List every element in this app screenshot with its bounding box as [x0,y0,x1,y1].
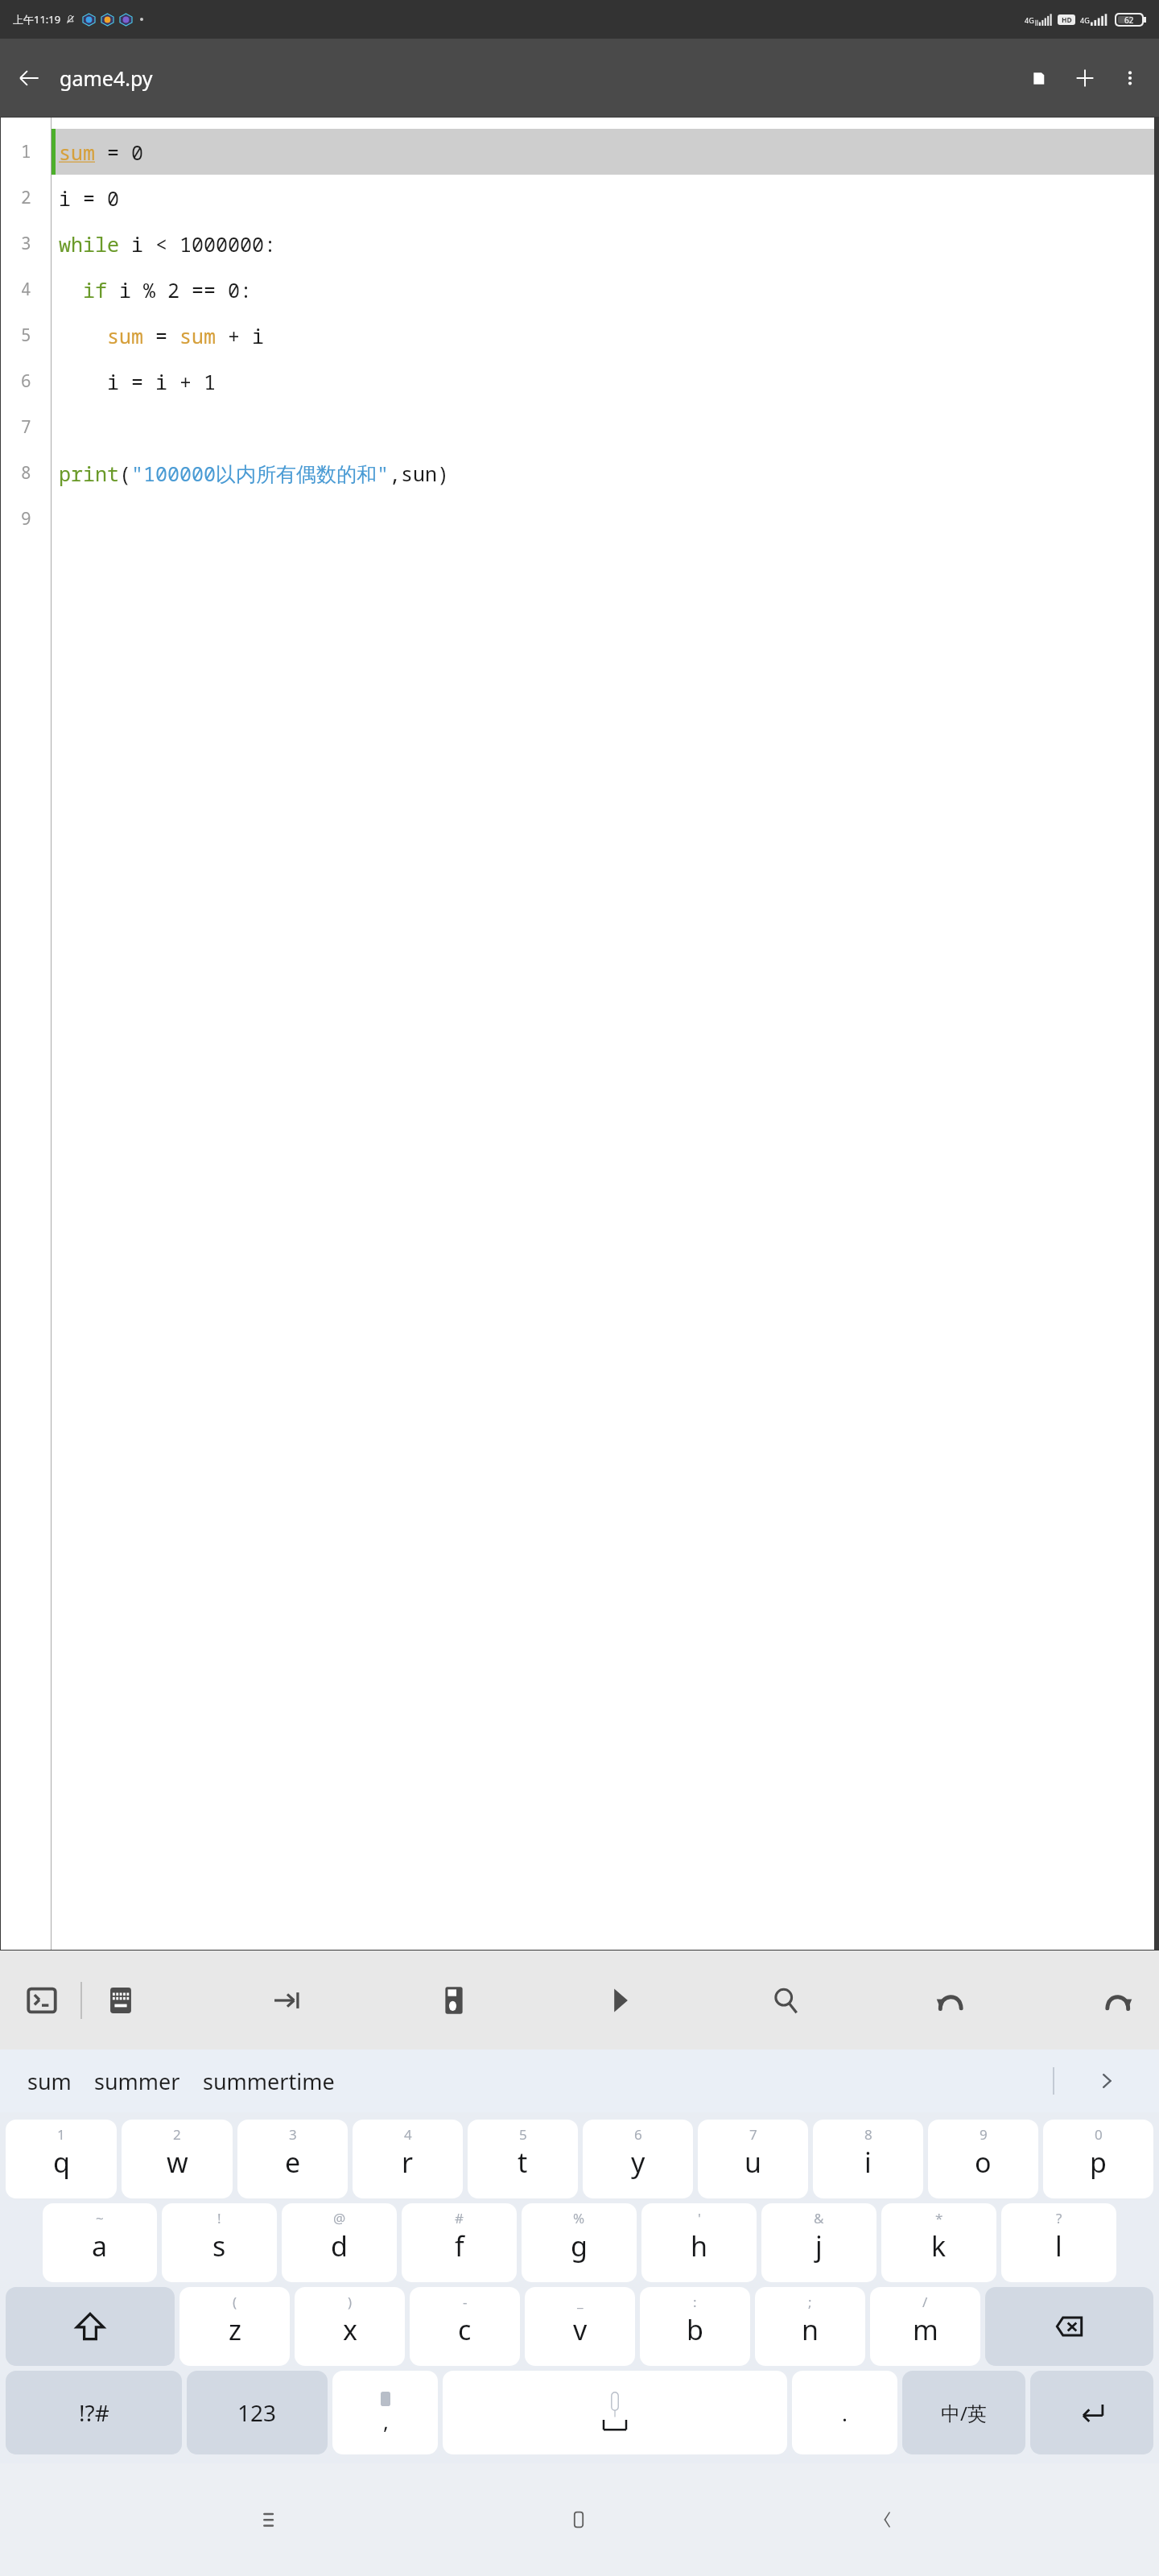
staticText: 9 [21,507,31,530]
staticText: 中/英 [941,2400,987,2426]
button[interactable]: 123 [187,2371,328,2454]
staticText: 3 [289,2125,297,2144]
staticText: : [693,2293,697,2311]
button[interactable]: Recents [235,2483,307,2556]
button[interactable]: !?# [6,2371,182,2454]
staticText: a [92,2227,108,2264]
staticText: if i % 2 == 0: [59,276,253,303]
staticText: HD [1062,15,1072,25]
button[interactable]: Console [18,1976,66,2025]
staticText: 5 [519,2125,527,2144]
button[interactable]: Back [6,56,52,101]
staticText: _ [577,2293,584,2311]
button[interactable]: 9 [928,2120,1038,2198]
button[interactable]: _ [525,2287,635,2366]
staticText: ( [233,2293,237,2311]
staticText: 62 [1124,14,1134,25]
button[interactable]: More options [1107,56,1153,101]
button[interactable]: ( [179,2287,290,2366]
staticText: ; [808,2293,812,2311]
button[interactable]: 8 [813,2120,923,2198]
button[interactable]: * [881,2203,996,2282]
button[interactable]: 7 [698,2120,808,2198]
button[interactable]: Back [851,2483,923,2556]
staticText: i = i + 1 [59,368,217,395]
staticText: 7 [21,415,31,439]
staticText: j [815,2227,823,2264]
button[interactable]: ? [1001,2203,1116,2282]
button[interactable]: 5 [468,2120,578,2198]
button[interactable]: Indent [263,1976,311,2025]
button[interactable]: 6 [583,2120,693,2198]
button[interactable]: & [761,2203,876,2282]
button[interactable]: # [402,2203,517,2282]
button[interactable]: More suggestions [1054,2050,1159,2112]
staticText: e [285,2144,301,2181]
staticText: 5 [21,324,31,347]
button[interactable]: Redo [1093,1976,1141,2025]
button[interactable]: sum [27,2066,72,2096]
button[interactable]: / [870,2287,980,2366]
button[interactable]: Undo [927,1976,975,2025]
button[interactable]: ; [755,2287,865,2366]
button[interactable]: Backspace [985,2287,1153,2366]
staticText: r [402,2144,414,2181]
staticText: ~ [96,2209,104,2227]
button[interactable]: 2 [122,2120,233,2198]
button[interactable]: Search [761,1976,810,2025]
button[interactable]: ' [641,2203,757,2282]
staticText: x [343,2311,357,2348]
staticText: sum [27,2066,72,2096]
staticText: d [331,2227,348,2264]
button[interactable]: 1 [6,2120,117,2198]
staticText: summer [94,2066,180,2096]
staticText: , [383,2407,389,2435]
button[interactable]: @ [282,2203,397,2282]
staticText: i = 0 [59,184,120,212]
button[interactable]: Save [430,1976,478,2025]
button[interactable]: 4 [353,2120,463,2198]
button[interactable]: New file [1062,56,1107,101]
staticText: k [931,2227,947,2264]
staticText: ) [348,2293,353,2311]
button[interactable]: 3 [237,2120,348,2198]
staticText: & [814,2209,824,2227]
button[interactable]: Home [542,2483,615,2556]
button[interactable]: : [640,2287,750,2366]
staticText: 2 [173,2125,181,2144]
staticText: c [458,2311,472,2348]
button[interactable]: , [332,2371,438,2454]
button[interactable]: Shift [6,2287,175,2366]
staticText: 2 [21,186,31,209]
staticText: 4 [21,278,31,301]
staticText: i [864,2144,872,2181]
staticText: !?# [79,2397,109,2428]
staticText: game4.py [60,64,153,92]
staticText: 4G [1080,15,1090,25]
button[interactable]: Space [443,2371,787,2454]
button[interactable]: summertime [203,2066,335,2096]
button[interactable]: Enter [1030,2371,1153,2454]
staticText: m [913,2311,938,2348]
button[interactable]: Open folder [1017,56,1062,101]
button[interactable]: . [792,2371,897,2454]
staticText: ! [217,2209,221,2227]
button[interactable]: ! [162,2203,277,2282]
staticText: while i < 1000000: [59,230,277,258]
button[interactable]: - [410,2287,520,2366]
staticText: h [691,2227,708,2264]
button[interactable]: 中/英 [902,2371,1025,2454]
button[interactable]: ) [295,2287,405,2366]
staticText: 4G [1025,15,1034,25]
staticText: s [212,2227,226,2264]
button[interactable]: summer [94,2066,180,2096]
button[interactable]: Keyboard [97,1976,145,2025]
staticText: % [573,2209,585,2227]
staticText: / [922,2293,928,2311]
button[interactable]: ~ [43,2203,157,2282]
staticText: q [53,2144,70,2181]
button[interactable]: 0 [1043,2120,1153,2198]
staticText: . [842,2399,848,2427]
button[interactable]: Run [596,1976,644,2025]
button[interactable]: % [522,2203,637,2282]
